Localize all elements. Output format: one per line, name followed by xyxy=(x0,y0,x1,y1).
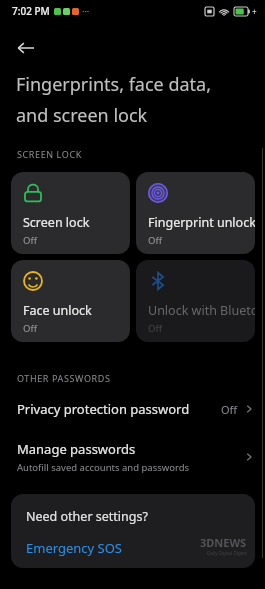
button[interactable]: Emergency SOS xyxy=(26,539,122,557)
staticText: Daily Digital Digest xyxy=(207,550,247,556)
staticText: Screen lock xyxy=(23,214,90,231)
staticText: Off xyxy=(148,234,162,247)
staticText: Emergency SOS xyxy=(26,539,122,557)
staticText: Face unlock xyxy=(23,302,92,319)
staticText: Fingerprints, face data, xyxy=(16,72,212,97)
staticText: Privacy protection password xyxy=(17,400,190,418)
staticText: OTHER PASSWORDS xyxy=(17,372,111,384)
staticText: Off xyxy=(148,322,162,335)
staticText: Fingerprint unlock xyxy=(148,214,255,231)
staticText: Off xyxy=(23,234,37,247)
staticText: 3DNEWS xyxy=(200,535,247,550)
staticText: and screen lock xyxy=(16,103,148,128)
staticText: Unlock with Bluetooth xyxy=(148,302,255,319)
staticText: Autofill saved accounts and passwords xyxy=(17,461,190,474)
staticText: Manage passwords xyxy=(17,440,136,458)
staticText: + xyxy=(252,6,257,17)
button[interactable]: Privacy protection password xyxy=(0,396,265,422)
button[interactable]: Fingerprint unlock xyxy=(136,172,255,254)
staticText: 7:02 PM xyxy=(12,4,50,18)
button[interactable]: Face unlock xyxy=(11,260,130,342)
staticText: Need other settings? xyxy=(26,508,148,525)
staticText: Off xyxy=(221,402,238,417)
staticText: Off xyxy=(23,322,37,335)
button[interactable]: Back xyxy=(8,30,44,66)
button[interactable]: Manage passwords xyxy=(0,438,265,476)
button[interactable]: Unlock with Bluetooth xyxy=(136,260,255,342)
staticText: SCREEN LOCK xyxy=(17,148,82,160)
button[interactable]: Screen lock xyxy=(11,172,130,254)
staticText: ··· xyxy=(82,5,90,17)
